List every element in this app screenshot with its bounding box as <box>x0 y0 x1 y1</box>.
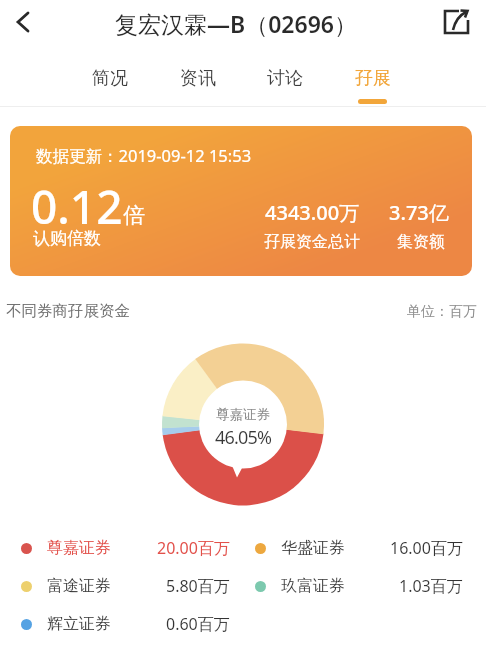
button[interactable]: 简况 <box>70 52 150 104</box>
button[interactable]: 辉立证券 <box>16 610 230 638</box>
button[interactable]: 数据更新：2019-09-12 15:53 <box>10 126 472 276</box>
staticText: 16.00百万 <box>390 537 463 559</box>
staticText: 5.80百万 <box>166 575 230 597</box>
button[interactable]: 资讯 <box>158 52 238 104</box>
staticText: 46.05% <box>215 425 272 450</box>
staticText: 倍 <box>123 202 145 230</box>
staticText: 4343.00万 <box>265 199 360 226</box>
staticText: 0.60百万 <box>166 613 230 635</box>
staticText: 孖展资金总计 <box>264 232 360 252</box>
button[interactable]: 玖富证券 <box>250 572 463 600</box>
button[interactable]: 华盛证券 <box>250 534 463 562</box>
staticText: 尊嘉证券 <box>216 406 270 423</box>
staticText: 尊嘉证券 <box>47 538 111 558</box>
staticText: 集资额 <box>397 232 445 252</box>
button[interactable] <box>434 0 480 44</box>
staticText: 孖展 <box>355 67 391 90</box>
button[interactable]: 富途证券 <box>16 572 230 600</box>
staticText: 1.03百万 <box>399 575 463 597</box>
staticText: 讨论 <box>267 67 303 90</box>
staticText: 资讯 <box>180 67 216 90</box>
staticText: 0.12 <box>31 175 123 238</box>
staticText: 不同券商孖展资金 <box>6 301 130 321</box>
staticText: 3.73亿 <box>389 199 449 226</box>
staticText: 华盛证券 <box>281 538 345 558</box>
staticText: 认购倍数 <box>33 228 101 249</box>
button[interactable]: 孖展 <box>333 52 413 104</box>
button[interactable]: 尊嘉证券 <box>16 534 230 562</box>
staticText: 单位：百万 <box>407 303 477 321</box>
staticText: 复宏汉霖—B（02696） <box>115 8 357 39</box>
staticText: 简况 <box>92 67 128 90</box>
staticText: 富途证券 <box>47 576 111 596</box>
staticText: 数据更新：2019-09-12 15:53 <box>36 144 252 167</box>
staticText: 玖富证券 <box>281 576 345 596</box>
staticText: 20.00百万 <box>157 537 230 559</box>
staticText: 辉立证券 <box>47 614 111 634</box>
button[interactable]: 讨论 <box>245 52 325 104</box>
button[interactable] <box>4 2 44 42</box>
